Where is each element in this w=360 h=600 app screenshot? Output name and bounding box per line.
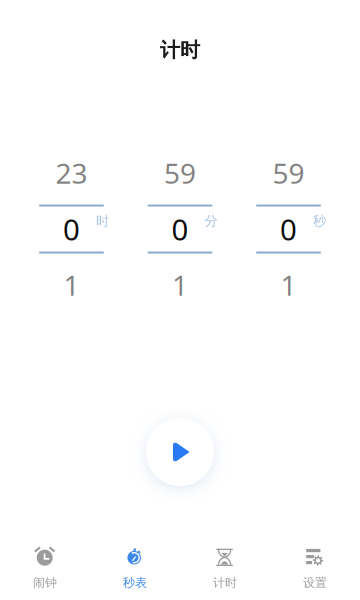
staticText: 59 <box>164 154 196 192</box>
button[interactable]: 设置 <box>270 534 360 598</box>
staticText: 计时 <box>160 38 200 62</box>
staticText: 秒 <box>313 213 326 229</box>
staticText: 1 <box>63 266 79 304</box>
button[interactable]: 计时 <box>180 534 270 598</box>
staticText: 59 <box>272 154 304 192</box>
staticText: 闹钟 <box>33 575 57 590</box>
staticText: 时 <box>96 213 109 229</box>
staticText: 0 <box>280 209 297 248</box>
staticText: 设置 <box>303 575 327 590</box>
button[interactable]: 秒表 <box>90 534 180 598</box>
button[interactable]: Start timer <box>128 400 232 504</box>
staticText: 1 <box>172 266 188 304</box>
staticText: 0 <box>63 209 80 248</box>
staticText: 1 <box>280 266 296 304</box>
staticText: 分 <box>204 213 217 229</box>
staticText: 0 <box>171 209 188 248</box>
staticText: 23 <box>55 154 87 192</box>
staticText: 秒表 <box>123 575 147 590</box>
staticText: 计时 <box>213 575 237 590</box>
button[interactable]: 闹钟 <box>0 534 90 598</box>
